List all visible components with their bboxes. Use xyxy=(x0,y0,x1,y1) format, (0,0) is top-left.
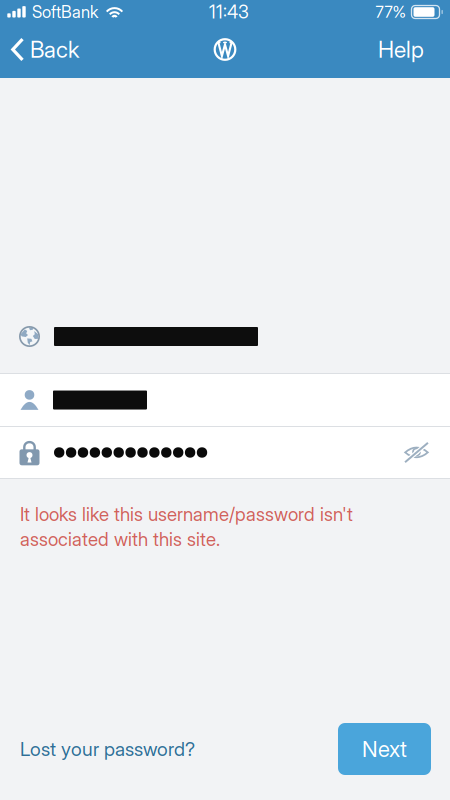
staticText: Lost your password? xyxy=(20,737,195,761)
button[interactable]: Help xyxy=(366,29,450,70)
button[interactable]: Back xyxy=(0,29,90,70)
staticText: 77% xyxy=(375,2,406,22)
staticText: associated with this site. xyxy=(20,528,220,551)
staticText: Help xyxy=(378,36,424,63)
button[interactable]: Show password xyxy=(394,429,439,475)
button[interactable]: Lost your password? xyxy=(0,725,195,773)
button[interactable]: Next xyxy=(338,723,431,775)
staticText: Next xyxy=(362,736,407,762)
staticText: 11:43 xyxy=(209,1,249,23)
staticText: Back xyxy=(30,36,80,63)
staticText: It looks like this username/password isn… xyxy=(20,503,353,526)
staticText: SoftBank xyxy=(32,2,98,22)
